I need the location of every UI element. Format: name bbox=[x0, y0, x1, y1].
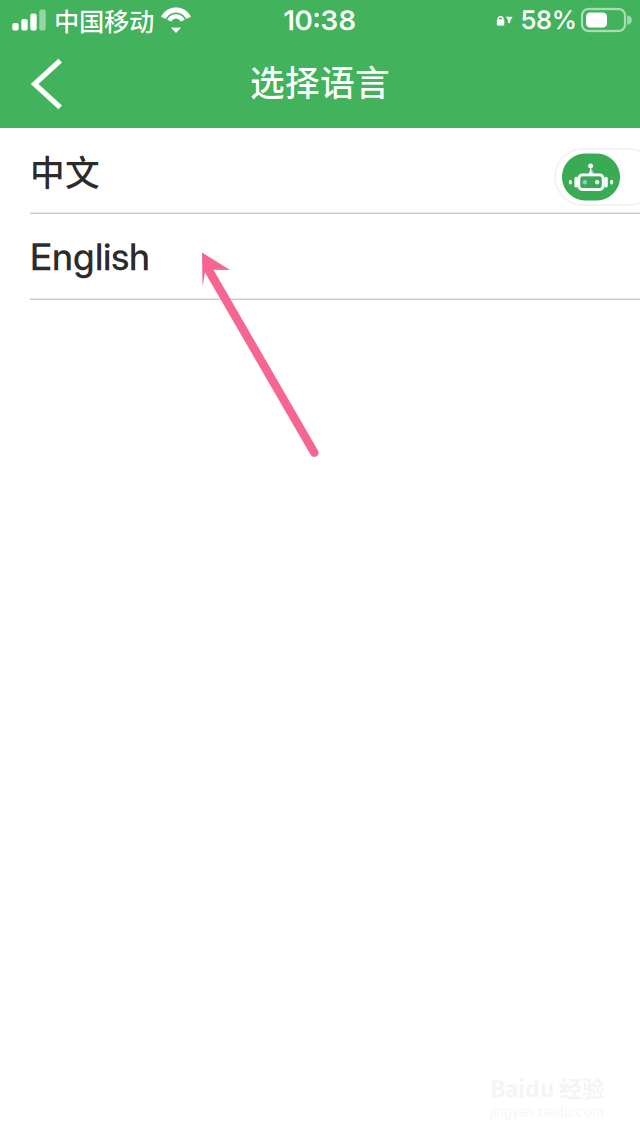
staticText: 选择语言 bbox=[250, 56, 390, 106]
button[interactable]: 中文 bbox=[0, 128, 640, 214]
button[interactable]: English bbox=[0, 214, 640, 300]
staticText: 10:38 bbox=[283, 3, 356, 37]
staticText: English bbox=[30, 235, 150, 279]
button[interactable]: Back bbox=[0, 39, 85, 129]
staticText: Baidu 经验 bbox=[490, 1071, 605, 1104]
staticText: 中国移动 bbox=[54, 2, 154, 38]
staticText: 中文 bbox=[30, 146, 100, 196]
staticText: 58% bbox=[521, 5, 577, 35]
staticText: jingyan.baidu.com bbox=[490, 1104, 604, 1120]
button[interactable]: Assistant bbox=[554, 148, 640, 206]
